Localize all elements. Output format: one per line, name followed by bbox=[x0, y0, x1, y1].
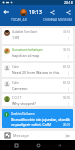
button[interactable]: More bbox=[66, 54, 71, 59]
staticText: 20:16 bbox=[63, 123, 71, 127]
button[interactable]: Recents bbox=[11, 140, 21, 150]
button[interactable]: More bbox=[66, 102, 71, 106]
button[interactable]: Home bbox=[33, 140, 43, 150]
staticText: Message bbox=[13, 133, 29, 138]
button[interactable]: More bbox=[66, 36, 71, 41]
staticText: 19:13 bbox=[29, 9, 42, 16]
staticText: Gurusstoon leeharbyne bbox=[12, 48, 43, 52]
staticText: 20:18 bbox=[64, 0, 73, 5]
button[interactable]: Send bbox=[63, 131, 72, 140]
button[interactable]: Gulatbet Tom Saint bbox=[2, 28, 73, 44]
button[interactable]: More bbox=[66, 87, 71, 92]
button[interactable]: More bbox=[66, 71, 71, 76]
button[interactable]: C O 2 T bbox=[2, 94, 73, 106]
staticText: Why stopped? bbox=[12, 101, 36, 106]
button[interactable]: Colin bbox=[2, 63, 73, 77]
button[interactable]: Back bbox=[54, 140, 64, 150]
button[interactable]: Attach image bbox=[3, 131, 12, 140]
button[interactable]: Colin bbox=[2, 79, 73, 92]
staticText: hapdi an al map bbox=[12, 53, 40, 58]
staticText: 33:16 bbox=[63, 30, 71, 34]
button[interactable]: Back bbox=[0, 6, 12, 18]
button[interactable]: Ibrahim/Gulbaren bbox=[2, 109, 73, 128]
staticText: 1:09 bbox=[12, 35, 20, 40]
staticText: Cameron bbox=[12, 86, 28, 91]
button[interactable]: More options bbox=[63, 7, 74, 18]
staticText: $0.52 bbox=[63, 65, 71, 69]
staticText: Colin bbox=[12, 81, 19, 85]
staticText: 30:16 bbox=[63, 48, 71, 52]
button[interactable]: Gurusstoon leeharbyne bbox=[2, 46, 73, 61]
staticText: Gulatbet Tom Saint bbox=[12, 30, 38, 34]
staticText: Need 20 from Watara in this quarter bbox=[12, 70, 62, 75]
staticText: 00:55 bbox=[63, 96, 71, 100]
staticText: Ibrahim/Gulbaren bbox=[11, 112, 35, 116]
staticText: Colin bbox=[12, 65, 19, 69]
staticText: Bismutifocelrin icin jujundan, olorolik … bbox=[11, 117, 71, 127]
staticText: $0.52 bbox=[63, 81, 71, 85]
staticText: CHENNAI MUSEUM bbox=[43, 18, 72, 22]
staticText: C O 2 T bbox=[12, 96, 22, 100]
button[interactable]: Share bbox=[47, 7, 58, 18]
staticText: TODAY, AR bbox=[11, 18, 27, 22]
